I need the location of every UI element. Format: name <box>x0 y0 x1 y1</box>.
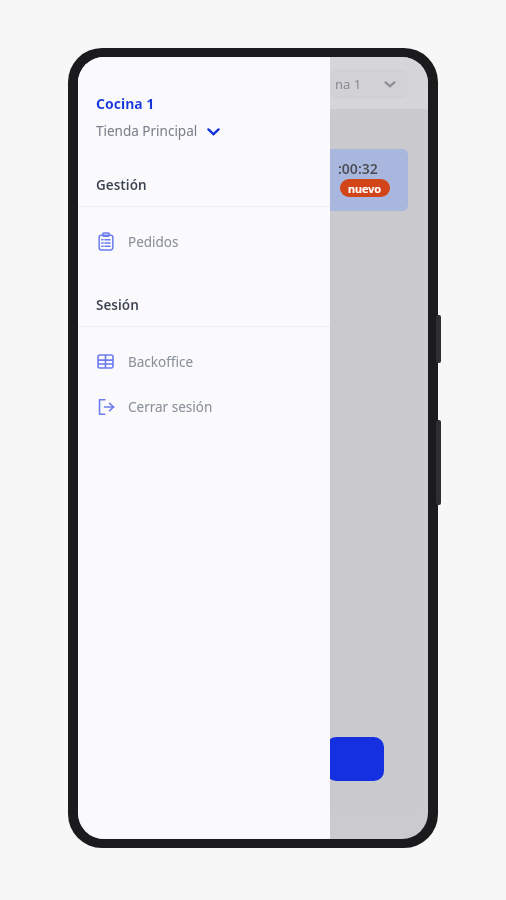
staticText: nuevo <box>348 181 382 196</box>
button[interactable]: Cerrar sesión <box>78 394 330 419</box>
button[interactable]: Pedidos <box>78 229 330 254</box>
staticText: Pedidos <box>128 233 179 251</box>
staticText: :00:32 <box>338 159 378 178</box>
button[interactable]: Nuevo pedido <box>326 737 384 781</box>
button[interactable]: Backoffice <box>78 349 330 374</box>
staticText: Backoffice <box>128 353 194 371</box>
button[interactable]: Cocina 1 <box>78 92 330 142</box>
button[interactable]: na 1 <box>330 69 408 99</box>
staticText: Gestión <box>96 176 147 194</box>
staticText: na 1 <box>335 75 362 93</box>
staticText: Cocina 1 <box>96 94 155 113</box>
staticText: Tienda Principal <box>96 122 198 140</box>
staticText: Sesión <box>96 296 139 314</box>
staticText: Cerrar sesión <box>128 398 213 416</box>
